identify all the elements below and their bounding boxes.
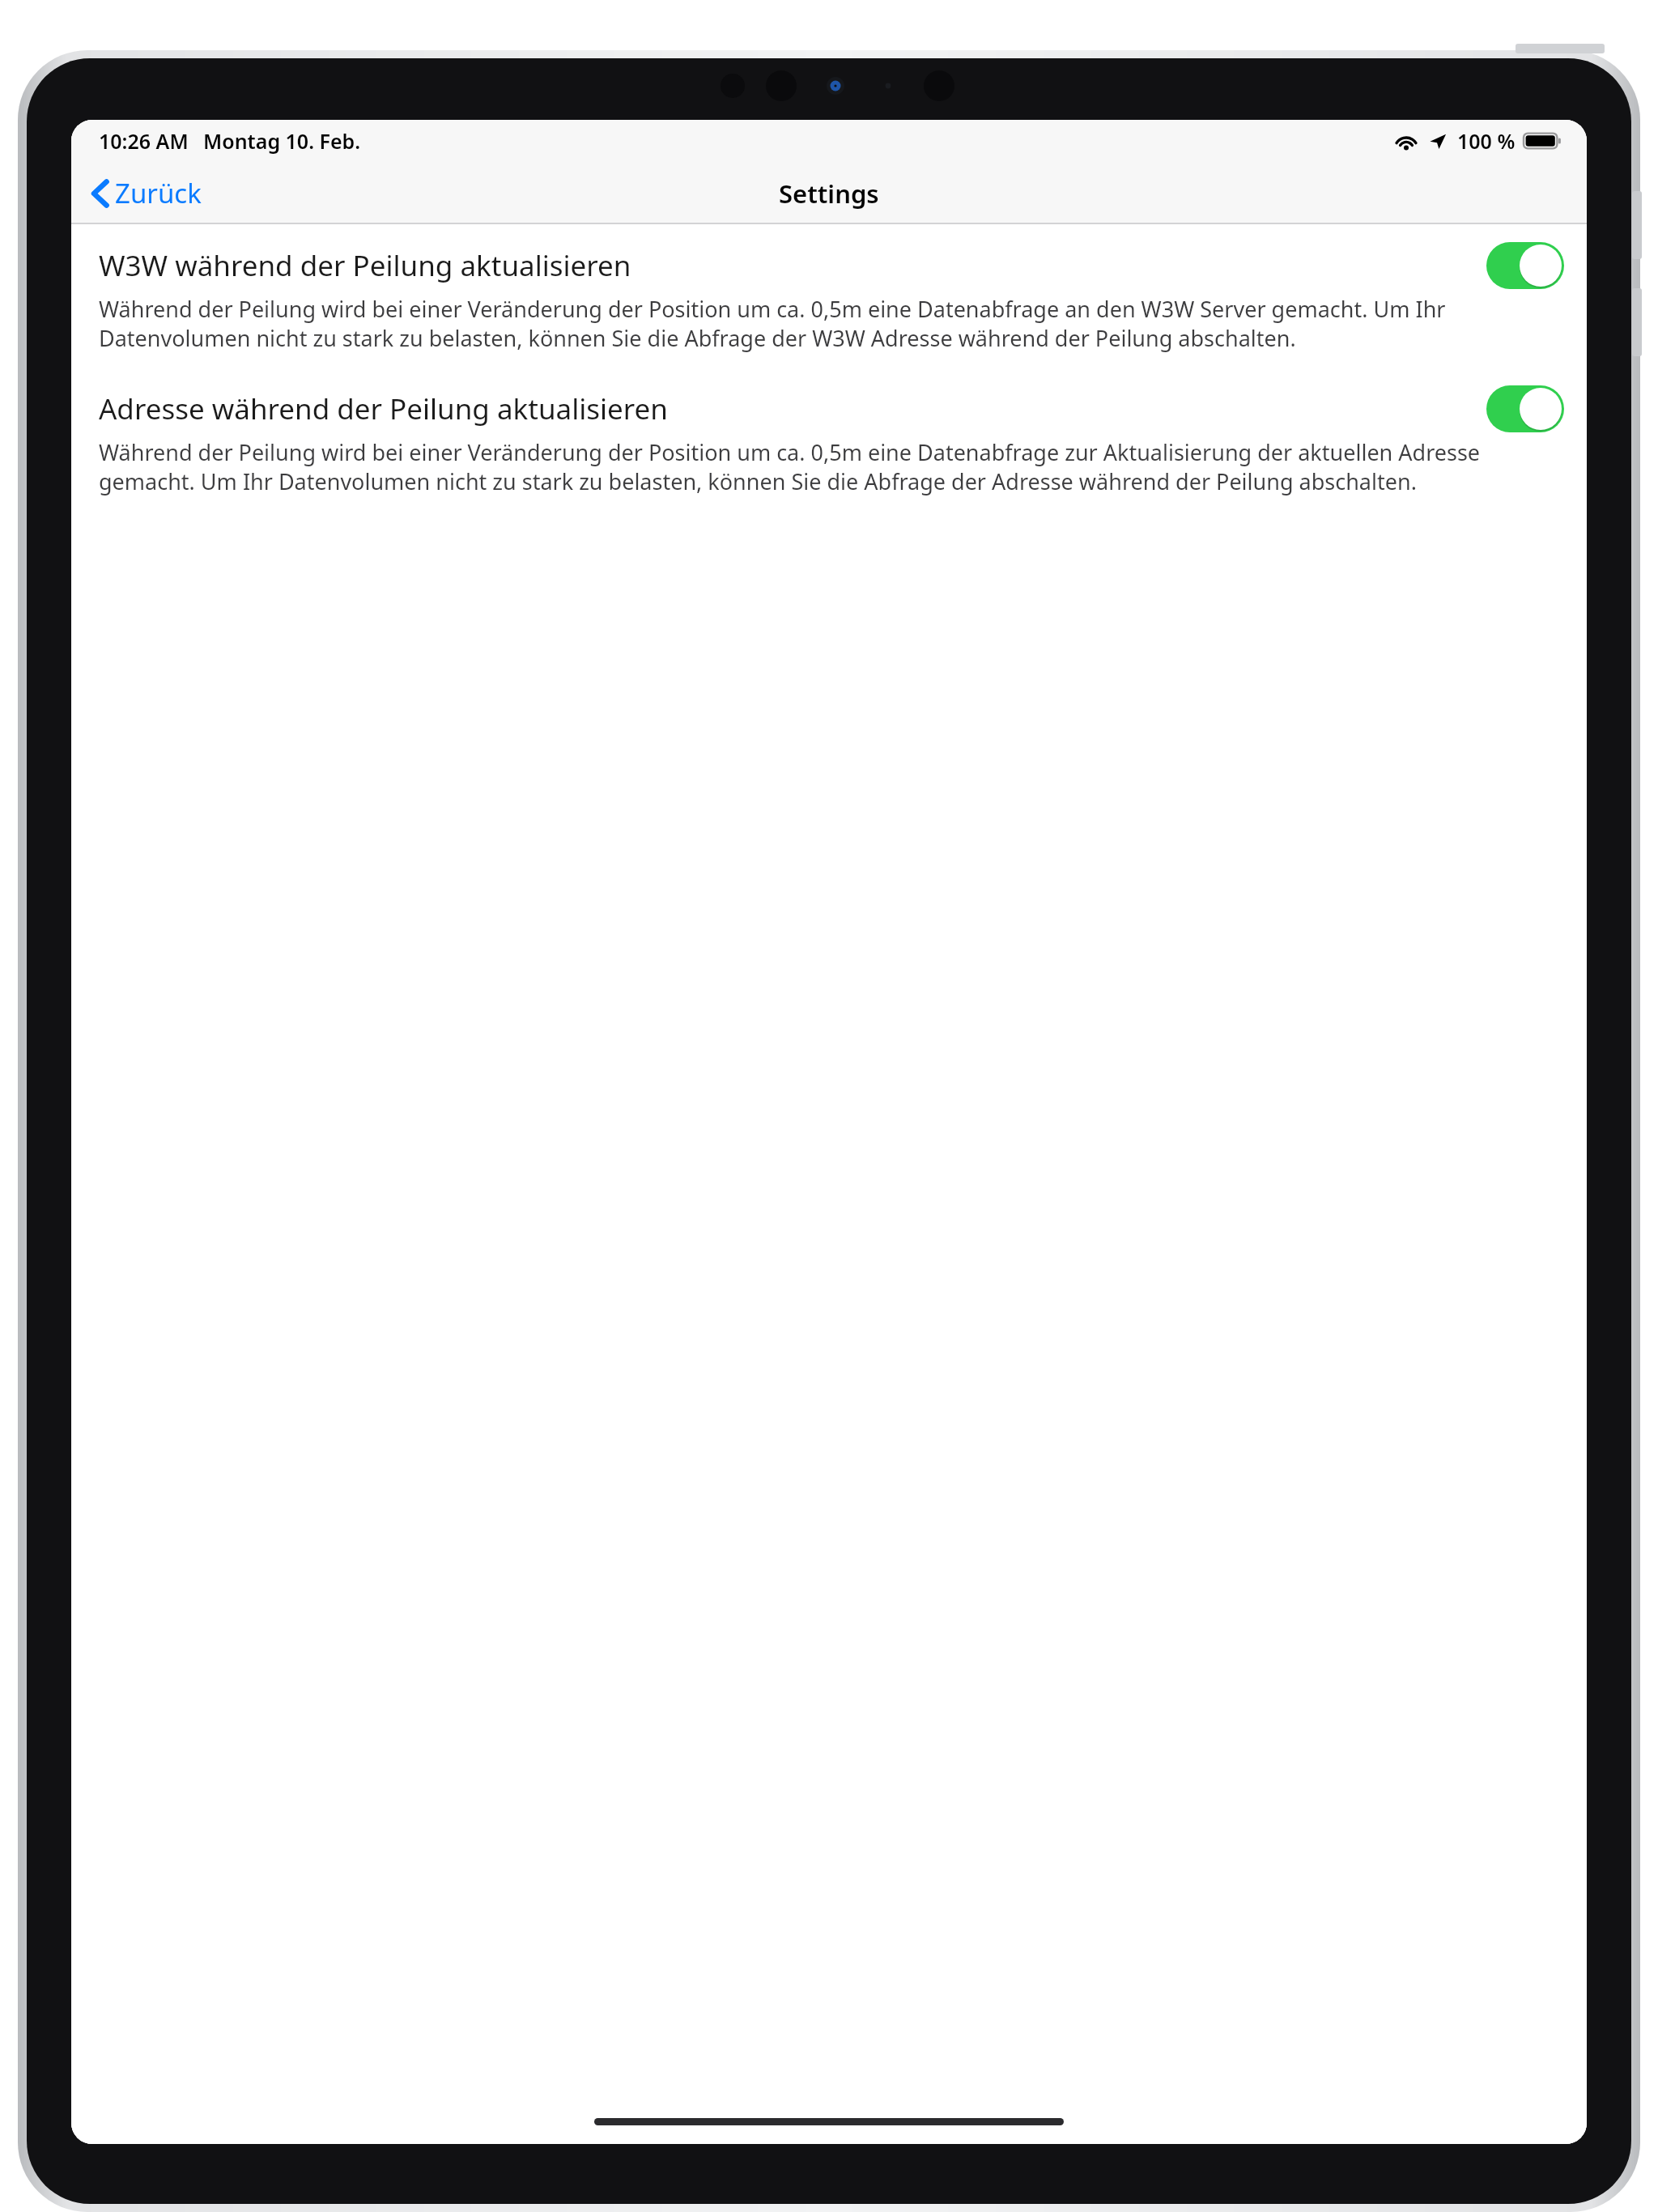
- staticText: 100 %: [1457, 127, 1516, 155]
- button[interactable]: Zurück: [84, 168, 210, 218]
- staticText: Während der Peilung wird bei einer Verän…: [99, 437, 1517, 496]
- staticText: W3W während der Peilung aktualisieren: [99, 246, 1486, 285]
- button[interactable]: Umschalten: [1486, 242, 1564, 289]
- button[interactable]: W3W während der Peilung aktualisieren: [71, 242, 1587, 289]
- staticText: Adresse während der Peilung aktualisiere…: [99, 389, 1486, 428]
- staticText: 10:26 AM: [99, 127, 189, 155]
- staticText: Während der Peilung wird bei einer Verän…: [99, 294, 1517, 353]
- button[interactable]: Umschalten: [1486, 385, 1564, 432]
- staticText: Settings: [779, 177, 879, 211]
- staticText: Zurück: [115, 175, 202, 211]
- button[interactable]: Adresse während der Peilung aktualisiere…: [71, 385, 1587, 432]
- staticText: Montag 10. Feb.: [203, 127, 361, 155]
